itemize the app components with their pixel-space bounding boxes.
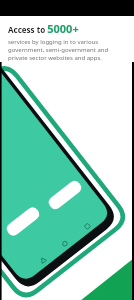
staticText: Access to 5000+ bbox=[8, 21, 79, 36]
staticText: services by logging in to various govern… bbox=[8, 38, 128, 62]
